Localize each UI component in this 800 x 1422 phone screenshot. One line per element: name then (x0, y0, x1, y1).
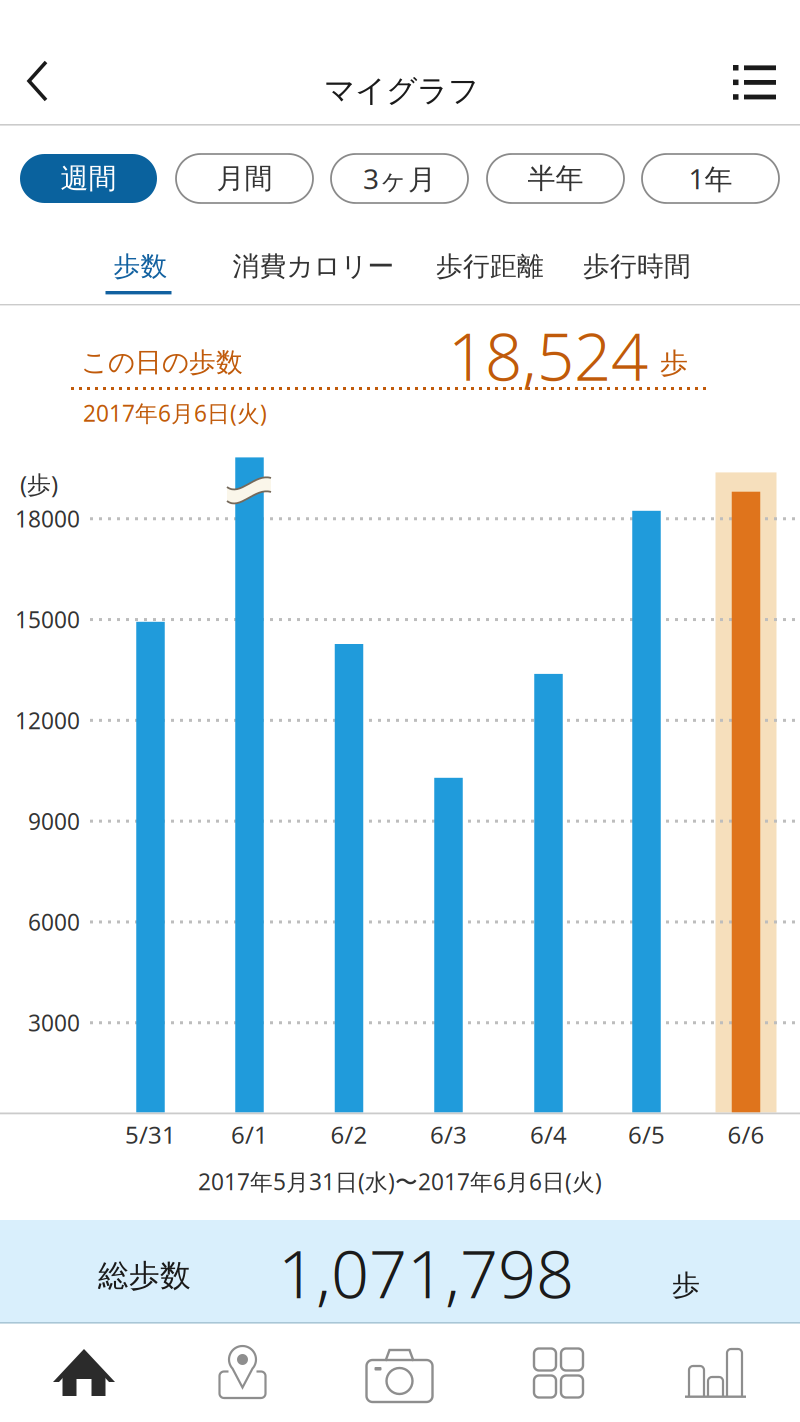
staticText: 歩 (672, 1268, 700, 1302)
staticText: 総歩数 (98, 1257, 191, 1295)
staticText: 6/2 (330, 1119, 367, 1150)
staticText: 週間 (60, 161, 116, 196)
staticText: 1年 (688, 160, 732, 197)
button[interactable]: 歩行距離 (436, 247, 544, 309)
staticText: 12000 (15, 705, 80, 735)
button[interactable]: 消費カロリー (233, 247, 394, 309)
button[interactable]: グラフ (640, 1322, 800, 1422)
staticText: 6/1 (231, 1119, 268, 1150)
button[interactable]: 3ヶ月 (331, 154, 468, 203)
button[interactable]: 半年 (487, 154, 624, 203)
button[interactable]: マップ (160, 1322, 320, 1422)
staticText: 1,071,798 (278, 1228, 574, 1316)
staticText: 3ヶ月 (363, 160, 436, 197)
staticText: 3000 (28, 1008, 80, 1038)
button[interactable]: メニュー (708, 40, 800, 124)
staticText: 歩行距離 (436, 250, 544, 283)
staticText: 6000 (28, 907, 80, 937)
button[interactable]: 週間 (20, 154, 157, 203)
staticText: 18000 (15, 504, 80, 534)
staticText: 消費カロリー (232, 250, 394, 283)
staticText: 2017年5月31日(水)〜2017年6月6日(火) (198, 1166, 602, 1196)
staticText: この日の歩数 (81, 346, 243, 379)
staticText: 6/6 (727, 1119, 764, 1150)
button[interactable]: 戻る (0, 40, 92, 124)
staticText: 6/4 (530, 1119, 567, 1150)
staticText: 18,524 (448, 312, 648, 399)
button[interactable]: メニュー一覧 (480, 1322, 640, 1422)
button[interactable]: ホーム (0, 1322, 160, 1422)
staticText: 歩数 (113, 250, 167, 283)
staticText: 月間 (216, 161, 272, 196)
staticText: (歩) (20, 468, 58, 500)
staticText: 半年 (527, 161, 583, 196)
staticText: 6/5 (628, 1119, 665, 1150)
staticText: 5/31 (125, 1119, 176, 1150)
staticText: 15000 (15, 604, 80, 635)
button[interactable]: 歩数 (114, 247, 167, 309)
staticText: マイグラフ (324, 72, 479, 110)
button[interactable]: 歩行時間 (583, 247, 691, 309)
staticText: 9000 (28, 806, 80, 836)
button[interactable]: 1年 (642, 154, 779, 203)
staticText: 2017年6月6日(火) (83, 398, 267, 428)
staticText: 歩行時間 (583, 250, 691, 283)
button[interactable]: カメラ (320, 1322, 480, 1422)
staticText: 6/3 (430, 1119, 467, 1150)
staticText: 歩 (660, 346, 688, 380)
button[interactable]: 月間 (176, 154, 313, 203)
